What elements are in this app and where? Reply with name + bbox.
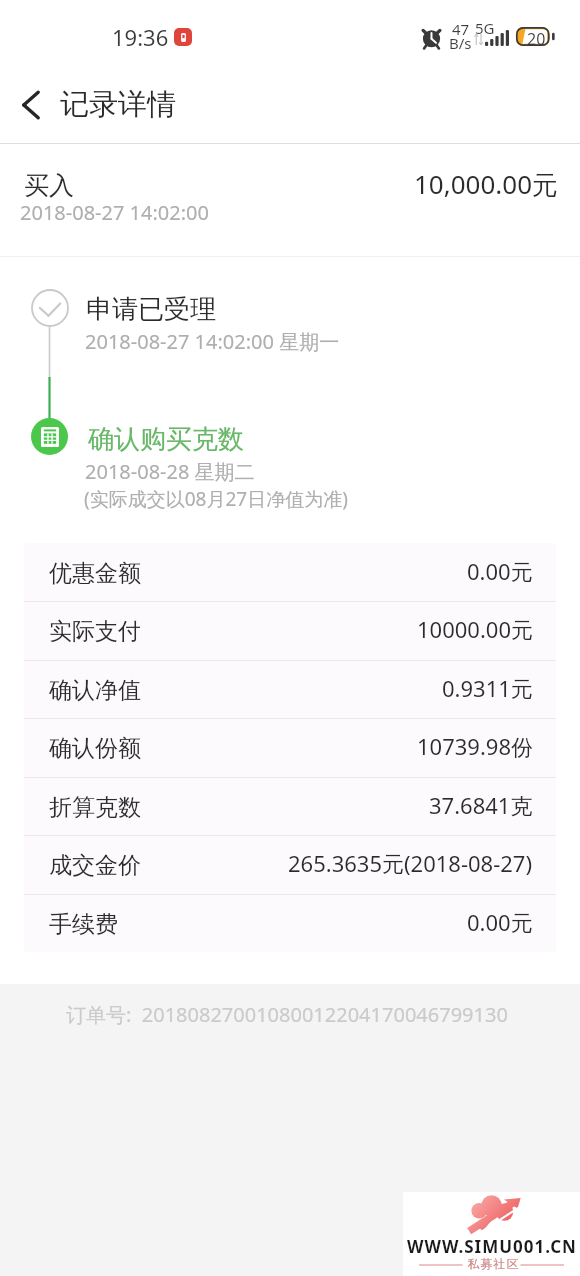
- button[interactable]: 确认份额: [24, 718, 556, 776]
- staticText: 确认购买克数: [88, 423, 244, 456]
- staticText: WWW.SIMU001.CN: [407, 1235, 577, 1258]
- staticText: 0.00元: [467, 556, 533, 586]
- staticText: 确认份额: [49, 734, 141, 763]
- staticText: 5G: [475, 18, 495, 38]
- staticText: 2018-08-28 星期二: [85, 458, 255, 485]
- staticText: 19:36: [112, 22, 169, 52]
- staticText: 47: [452, 19, 470, 39]
- staticText: 37.6841克: [429, 790, 533, 820]
- staticText: 申请已受理: [86, 293, 216, 326]
- staticText: 折算克数: [49, 793, 141, 822]
- staticText: 10000.00元: [417, 614, 533, 644]
- staticText: 确认净值: [49, 676, 141, 705]
- button[interactable]: 折算克数: [24, 777, 556, 835]
- staticText: 10739.98份: [417, 731, 533, 761]
- staticText: 实际支付: [49, 617, 141, 646]
- staticText: B/s: [449, 33, 472, 53]
- staticText: 私募社区: [467, 1256, 519, 1271]
- staticText: 订单号: 20180827001080012204170046799130: [66, 1001, 508, 1028]
- button[interactable]: 确认净值: [24, 660, 556, 718]
- button[interactable]: 手续费: [24, 894, 556, 952]
- staticText: 手续费: [49, 910, 118, 939]
- staticText: 记录详情: [60, 86, 176, 123]
- staticText: 优惠金额: [49, 559, 141, 588]
- staticText: 2018-08-27 14:02:00 星期一: [85, 328, 340, 355]
- staticText: 265.3635元(2018-08-27): [288, 848, 533, 878]
- button[interactable]: 实际支付: [24, 601, 556, 659]
- staticText: 10,000.00元: [414, 166, 559, 202]
- staticText: 成交金价: [49, 851, 141, 880]
- button[interactable]: Back: [2, 76, 60, 134]
- staticText: (实际成交以08月27日净值为准): [84, 486, 348, 512]
- staticText: 2018-08-27 14:02:00: [20, 199, 209, 226]
- staticText: 0.00元: [467, 907, 533, 937]
- staticText: 20: [527, 28, 546, 47]
- button[interactable]: 成交金价: [24, 835, 556, 893]
- other: Alarm: [421, 27, 442, 48]
- staticText: 买入: [24, 170, 74, 201]
- staticText: 0.9311元: [442, 673, 533, 703]
- button[interactable]: 买入: [0, 144, 580, 256]
- button[interactable]: 优惠金额: [24, 543, 556, 601]
